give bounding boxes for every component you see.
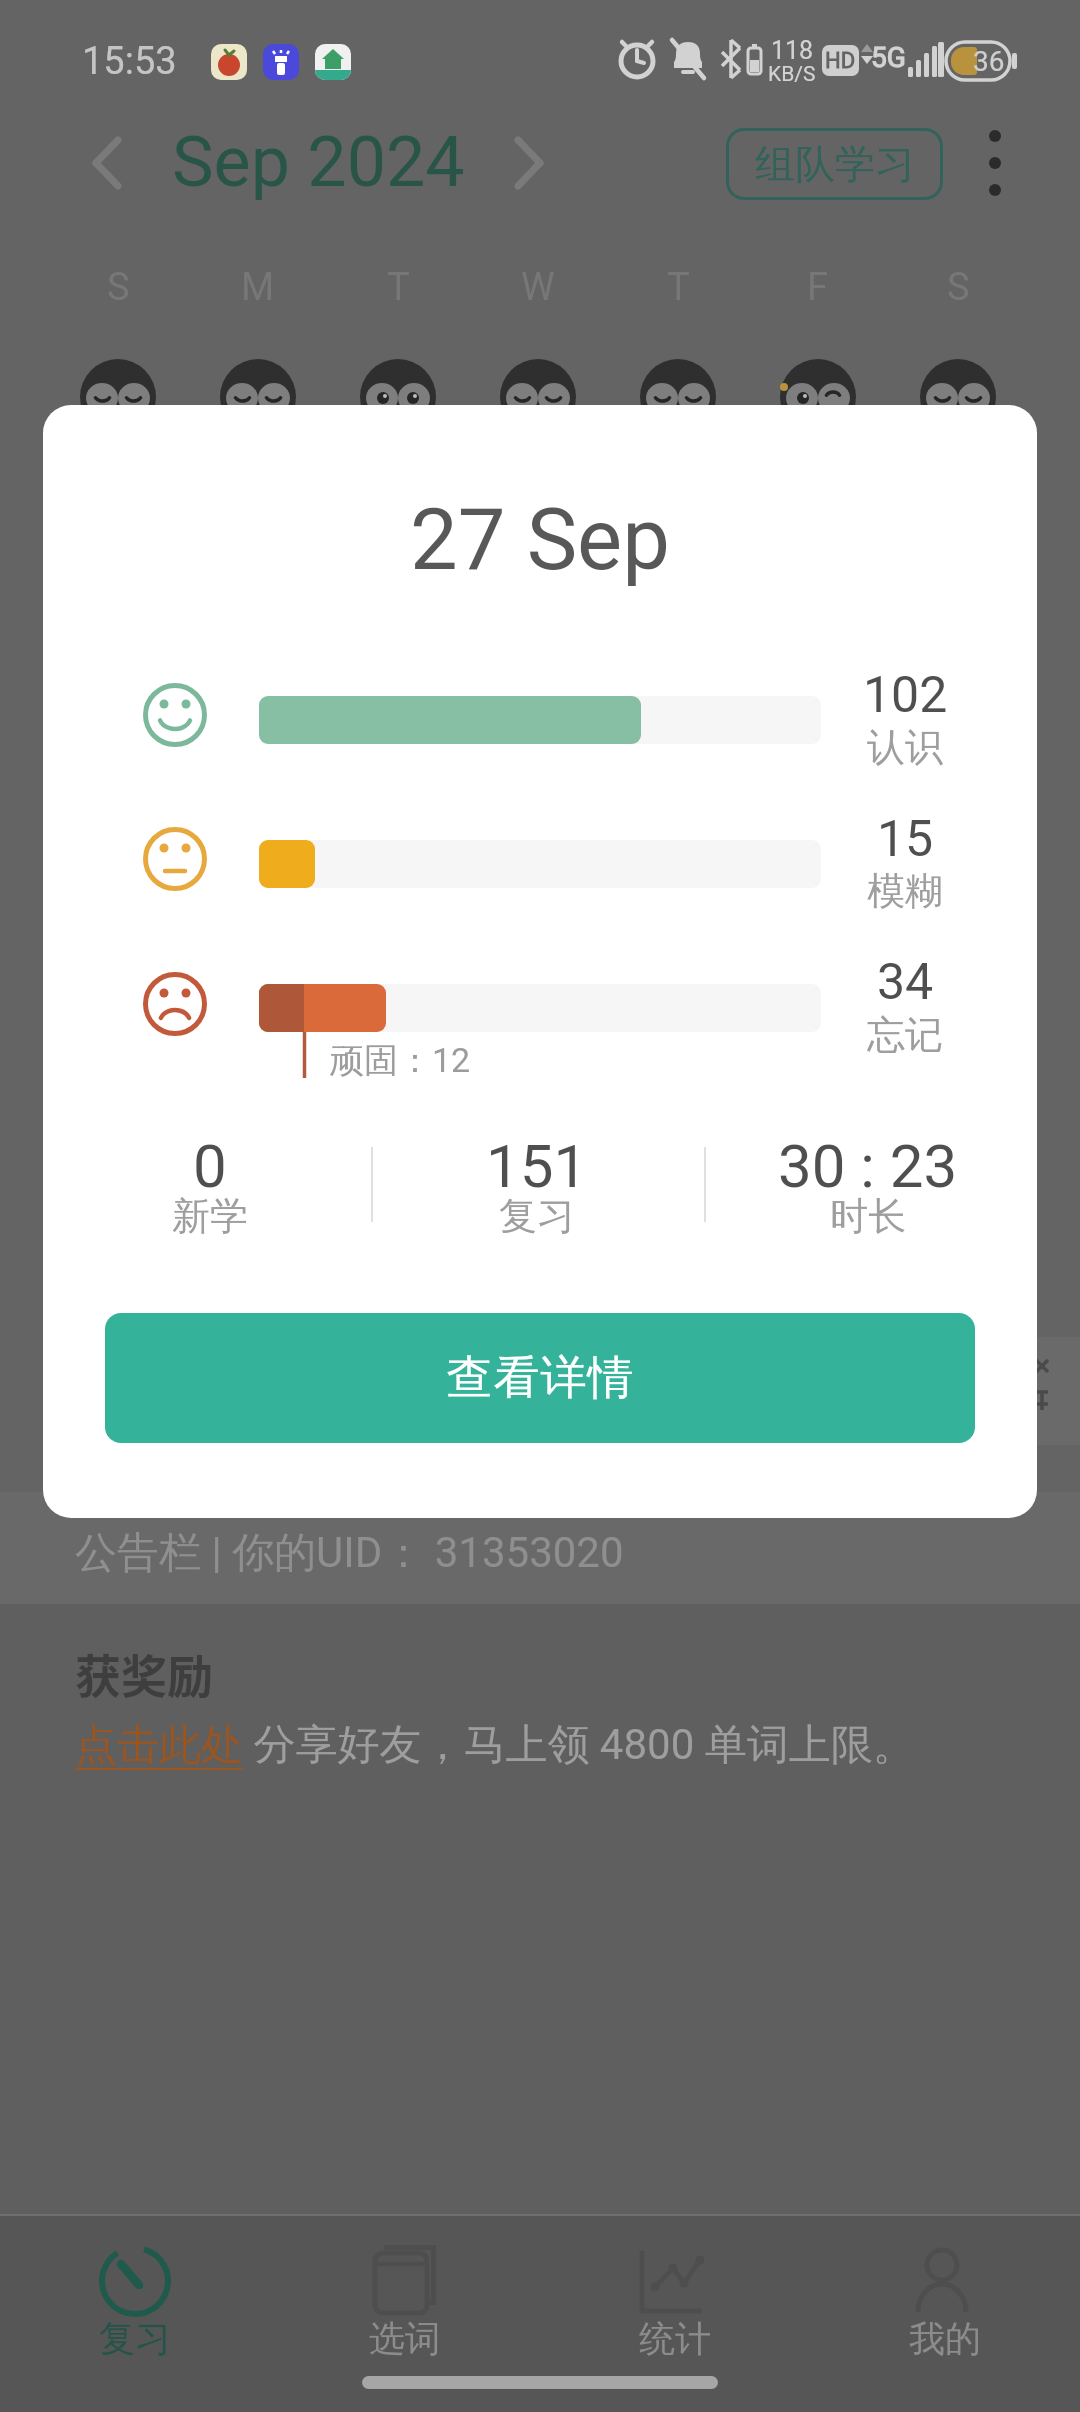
staticText: 34 — [877, 953, 934, 1012]
button[interactable] — [495, 125, 565, 201]
staticText: F — [807, 265, 829, 310]
staticText: 我的 — [909, 2316, 981, 2361]
staticText: 时长 — [830, 1192, 906, 1240]
button[interactable] — [45, 2230, 225, 2370]
staticText: 15 — [877, 810, 934, 869]
button[interactable] — [75, 125, 145, 201]
staticText: 获奖励 — [75, 1640, 213, 1707]
staticText: 组队学习 — [755, 139, 915, 189]
staticText: M — [241, 265, 275, 310]
staticText: 102 — [863, 666, 948, 725]
staticText: 统计 — [639, 2316, 711, 2361]
button[interactable] — [855, 2230, 1035, 2370]
staticText: 公告栏 | 你的UID： 31353020 — [75, 1527, 624, 1580]
button[interactable] — [585, 2230, 765, 2370]
staticText: 选词 — [369, 2316, 441, 2361]
staticText: S — [947, 265, 970, 310]
staticText: T — [387, 265, 410, 310]
staticText: 36 — [973, 45, 1005, 78]
button[interactable]: 组队学习 — [726, 128, 943, 200]
staticText: W — [521, 265, 555, 310]
staticText: 忘记 — [867, 1011, 943, 1059]
staticText: 分享好友，马上领 4800 单词上限。 — [243, 1719, 915, 1772]
staticText: 复习 — [99, 2316, 171, 2361]
staticText: 30 : 23 — [778, 1131, 958, 1201]
staticText: HD — [825, 48, 856, 74]
staticText: 27 Sep — [410, 490, 670, 590]
staticText: 151 — [486, 1131, 588, 1201]
staticText: 顽固：12 — [330, 1039, 471, 1082]
staticText: 复习 — [499, 1192, 575, 1240]
staticText: Sep 2024 — [172, 121, 465, 203]
staticText: T — [667, 265, 690, 310]
staticText: 认识 — [867, 723, 943, 771]
button[interactable]: 点击此处 — [75, 1719, 243, 1772]
button[interactable]: 查看详情 — [105, 1313, 975, 1443]
staticText: 5G — [871, 41, 906, 74]
staticText: S — [107, 265, 130, 310]
staticText: 15:53 — [82, 39, 177, 84]
button[interactable] — [315, 2230, 495, 2370]
staticText: 模糊 — [867, 867, 943, 915]
staticText: 0 — [193, 1131, 227, 1201]
staticText: 118 — [771, 36, 814, 65]
button[interactable] — [955, 118, 1035, 208]
staticText: 新学 — [172, 1192, 248, 1240]
staticText: KB/S — [768, 62, 816, 87]
staticText: 查看详情 — [446, 1349, 634, 1407]
